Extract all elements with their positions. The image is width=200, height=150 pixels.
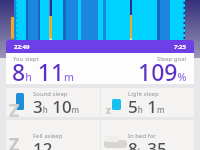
staticText: In bed for <box>128 132 156 140</box>
staticText: 3h 10m <box>33 95 80 118</box>
staticText: 22:49 <box>14 43 30 51</box>
staticText: 109% <box>138 56 187 87</box>
staticText: Fell asleep <box>33 132 63 140</box>
staticText: z <box>106 103 111 117</box>
staticText: Light sleep <box>128 90 159 98</box>
button[interactable]: In bed for <box>101 120 194 150</box>
button[interactable]: Z <box>6 120 100 150</box>
button[interactable]: 22:49 <box>14 40 186 53</box>
button[interactable]: You slept <box>6 53 194 84</box>
staticText: 5h 1m <box>128 95 165 118</box>
staticText: Z <box>9 132 20 150</box>
staticText: You slept <box>13 55 39 63</box>
staticText: 8h 35m <box>128 137 175 150</box>
button[interactable]: Z <box>6 88 100 117</box>
staticText: 7:25 <box>174 43 186 51</box>
staticText: 12m <box>33 137 61 150</box>
staticText: Sound sleep <box>33 90 68 98</box>
button[interactable]: z <box>101 88 194 117</box>
staticText: 8h 11m <box>12 56 74 87</box>
staticText: Sleep goal <box>157 55 187 63</box>
staticText: Z <box>9 98 20 123</box>
